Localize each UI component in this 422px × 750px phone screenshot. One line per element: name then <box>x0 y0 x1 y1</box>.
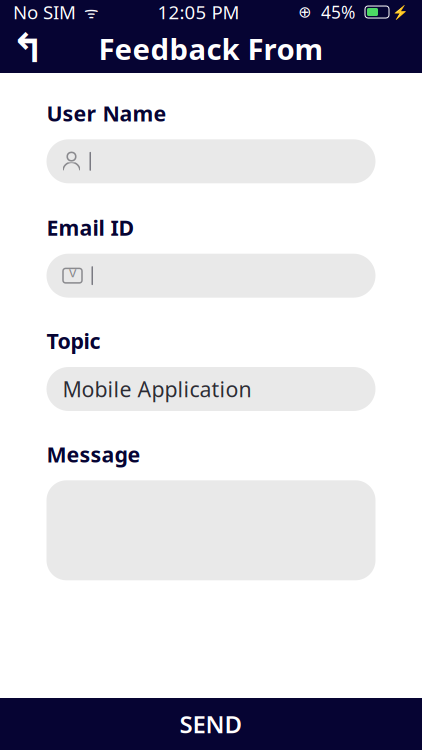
staticText: Feedback From <box>98 29 323 68</box>
staticText: Email ID <box>46 213 134 242</box>
staticText: Mobile Application <box>62 375 251 403</box>
staticText: Topic <box>46 327 100 355</box>
button[interactable]: v <box>46 254 375 298</box>
staticText: ⊕ <box>298 3 311 21</box>
button[interactable]: SEND <box>0 698 422 750</box>
staticText: ↰ <box>11 26 45 71</box>
staticText: User Name <box>46 99 166 127</box>
staticText: SEND <box>179 708 242 740</box>
staticText: 45% <box>311 0 365 23</box>
staticText: No SIM <box>13 0 76 24</box>
staticText: ᯤ <box>76 1 99 23</box>
staticText: Message <box>46 440 140 468</box>
staticText: ⚡ <box>389 3 409 21</box>
staticText: v <box>69 262 76 281</box>
button[interactable]: Back <box>0 24 56 73</box>
staticText: 12:05 PM <box>157 0 239 24</box>
button[interactable] <box>46 139 375 183</box>
button[interactable]: Mobile Application <box>46 367 375 411</box>
